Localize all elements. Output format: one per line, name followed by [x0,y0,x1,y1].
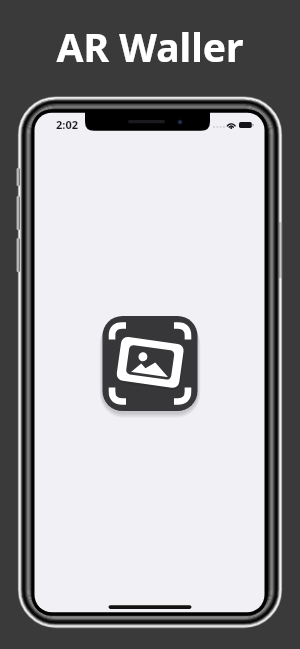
staticText: AR Waller [0,20,300,73]
staticText: 2:02 [56,117,78,132]
